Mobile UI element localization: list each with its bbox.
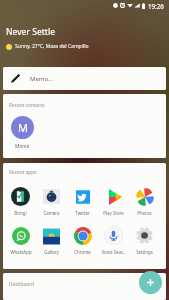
staticText: Mamá [15, 143, 30, 150]
staticText: Never Settle [6, 26, 56, 38]
staticText: M [18, 120, 28, 135]
staticText: Bring! [14, 210, 27, 216]
button[interactable]: M [11, 116, 34, 150]
staticText: Twitter [75, 210, 90, 216]
button[interactable]: Voice Sear... [98, 226, 129, 255]
staticText: Settings [136, 249, 153, 255]
button[interactable]: Bring! [5, 187, 36, 216]
staticText: Photos [137, 210, 152, 216]
staticText: Recent apps [9, 169, 37, 176]
button[interactable]: Photos [129, 187, 160, 216]
button[interactable]: Settings [129, 226, 160, 255]
button[interactable]: Twitter [67, 187, 98, 216]
button[interactable]: WhatsApp [5, 226, 36, 255]
staticText: Gallery [44, 249, 59, 255]
button[interactable]: Camera [36, 187, 67, 216]
staticText: Memo... [30, 75, 53, 83]
button[interactable]: Memo... [3, 67, 166, 90]
button[interactable]: Chrome [67, 226, 98, 255]
staticText: Chrome [74, 249, 91, 255]
button[interactable]: Play Store [98, 187, 129, 216]
staticText: WhatsApp [10, 249, 32, 255]
staticText: 19:26 [148, 2, 164, 10]
staticText: Play Store [103, 210, 124, 216]
staticText: Dashboard [9, 281, 34, 288]
staticText: Recent contacts [9, 102, 45, 109]
staticText: Sunny, 27°C, Maza del Campillo [15, 43, 89, 50]
button[interactable]: Add [139, 271, 162, 294]
staticText: Voice Sear... [101, 249, 126, 255]
button[interactable]: Gallery [36, 226, 67, 255]
staticText: Camera [43, 210, 60, 216]
